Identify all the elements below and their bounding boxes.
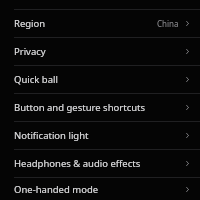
staticText: Button and gesture shortcuts [14,101,146,114]
button[interactable]: Button and gesture shortcuts [0,94,200,121]
button[interactable]: Headphones & audio effects [0,150,200,177]
button[interactable]: Region [0,10,200,37]
button[interactable]: Notification light [0,122,200,149]
button[interactable]: Privacy [0,38,200,65]
button[interactable]: One-handed mode [0,178,200,200]
staticText: One-handed mode [14,183,99,196]
staticText: China [157,18,179,29]
staticText: Privacy [14,45,46,58]
staticText: Headphones & audio effects [14,157,141,170]
button[interactable]: Quick ball [0,66,200,93]
staticText: Region [14,17,46,30]
staticText: Notification light [14,129,89,142]
staticText: Quick ball [14,73,58,86]
